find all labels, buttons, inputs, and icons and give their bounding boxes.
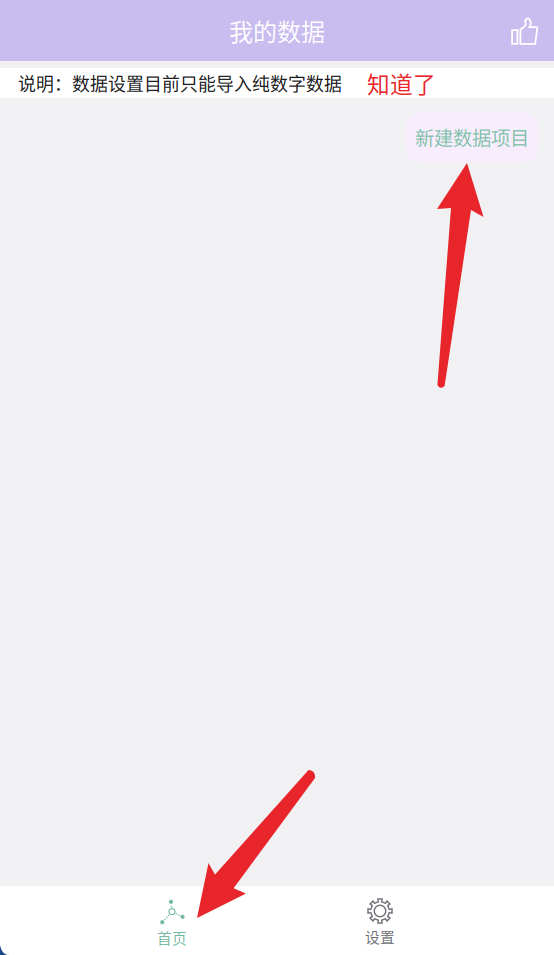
- button[interactable]: 点赞: [511, 15, 554, 45]
- button[interactable]: 设置: [314, 886, 446, 955]
- staticText: 设置: [365, 926, 395, 947]
- staticText: 首页: [157, 927, 187, 948]
- staticText: 说明：数据设置目前只能导入纯数字数据: [18, 70, 342, 96]
- button[interactable]: 新建数据项目: [406, 112, 538, 162]
- button[interactable]: 首页: [106, 886, 238, 955]
- staticText: 我的数据: [229, 13, 325, 48]
- staticText: 知道了: [367, 67, 436, 99]
- staticText: 新建数据项目: [415, 123, 529, 151]
- button[interactable]: 知道了: [367, 67, 554, 99]
